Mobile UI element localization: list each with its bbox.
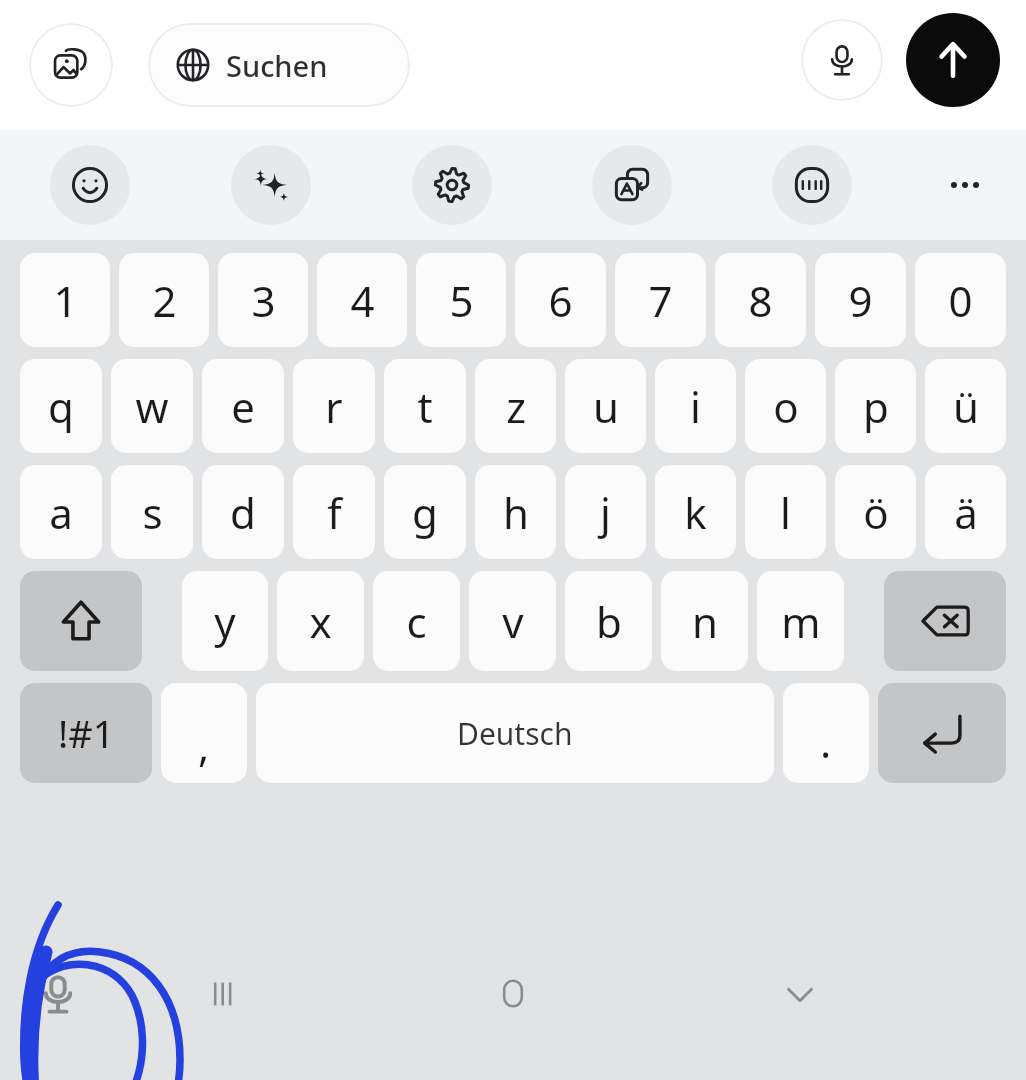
- button[interactable]: c: [373, 571, 460, 671]
- button[interactable]: t: [384, 359, 466, 453]
- staticText: f: [327, 484, 342, 541]
- button[interactable]: Emoji: [50, 145, 130, 225]
- button[interactable]: g: [384, 465, 466, 559]
- button[interactable]: Stickers and images: [29, 23, 113, 107]
- staticText: k: [684, 484, 707, 541]
- button[interactable]: Translate: [592, 145, 672, 225]
- staticText: 9: [848, 272, 873, 329]
- button[interactable]: 1: [20, 253, 110, 347]
- staticText: i: [690, 378, 701, 435]
- button[interactable]: j: [565, 465, 646, 559]
- button[interactable]: a: [20, 465, 102, 559]
- button[interactable]: 2: [119, 253, 209, 347]
- button[interactable]: 8: [715, 253, 806, 347]
- staticText: x: [309, 593, 332, 650]
- button[interactable]: Send: [906, 13, 1000, 107]
- staticText: 7: [648, 272, 673, 329]
- button[interactable]: Suchen: [148, 23, 410, 107]
- staticText: 3: [251, 272, 276, 329]
- button[interactable]: ü: [925, 359, 1006, 453]
- staticText: 4: [350, 272, 375, 329]
- button[interactable]: y: [182, 571, 268, 671]
- button[interactable]: k: [655, 465, 736, 559]
- button[interactable]: Enter: [878, 683, 1006, 783]
- button[interactable]: b: [565, 571, 652, 671]
- staticText: l: [780, 484, 791, 541]
- button[interactable]: o: [745, 359, 826, 453]
- button[interactable]: 0: [915, 253, 1006, 347]
- button[interactable]: l: [745, 465, 826, 559]
- button[interactable]: !#1: [20, 683, 152, 783]
- button[interactable]: Passwords: [772, 145, 852, 225]
- staticText: ü: [953, 378, 979, 435]
- button[interactable]: e: [202, 359, 284, 453]
- button[interactable]: w: [111, 359, 193, 453]
- button[interactable]: Shift: [20, 571, 142, 671]
- staticText: b: [596, 593, 622, 650]
- staticText: t: [417, 378, 433, 435]
- button[interactable]: 4: [317, 253, 407, 347]
- button[interactable]: 9: [815, 253, 906, 347]
- staticText: r: [325, 378, 343, 435]
- button[interactable]: 7: [615, 253, 706, 347]
- button[interactable]: AI suggestions: [231, 145, 311, 225]
- staticText: d: [230, 484, 256, 541]
- button[interactable]: h: [475, 465, 556, 559]
- staticText: v: [502, 593, 524, 650]
- staticText: q: [48, 378, 74, 435]
- staticText: w: [135, 378, 169, 435]
- staticText: p: [863, 378, 889, 435]
- button[interactable]: Voice input: [801, 19, 883, 101]
- button[interactable]: ä: [925, 465, 1006, 559]
- button[interactable]: Home: [477, 958, 549, 1030]
- button[interactable]: n: [661, 571, 748, 671]
- button[interactable]: f: [293, 465, 375, 559]
- staticText: ä: [954, 484, 978, 541]
- staticText: h: [503, 484, 529, 541]
- staticText: !#1: [58, 707, 115, 759]
- staticText: ö: [863, 484, 889, 541]
- button[interactable]: z: [475, 359, 556, 453]
- button[interactable]: 6: [515, 253, 606, 347]
- staticText: j: [600, 484, 611, 541]
- staticText: a: [49, 484, 73, 541]
- staticText: z: [506, 378, 526, 435]
- staticText: .: [820, 713, 832, 770]
- button[interactable]: d: [202, 465, 284, 559]
- button[interactable]: u: [565, 359, 646, 453]
- button[interactable]: 3: [218, 253, 308, 347]
- staticText: e: [231, 378, 255, 435]
- button[interactable]: Deutsch: [256, 683, 774, 783]
- button[interactable]: Hide keyboard: [764, 958, 836, 1030]
- staticText: 8: [748, 272, 773, 329]
- button[interactable]: ,: [161, 683, 247, 783]
- staticText: m: [781, 593, 821, 650]
- button[interactable]: Voice typing: [22, 958, 94, 1030]
- staticText: 2: [152, 272, 177, 329]
- staticText: 0: [948, 272, 973, 329]
- staticText: o: [773, 378, 799, 435]
- button[interactable]: x: [277, 571, 364, 671]
- button[interactable]: m: [757, 571, 844, 671]
- button[interactable]: Recent apps: [188, 958, 260, 1030]
- button[interactable]: Backspace: [884, 571, 1006, 671]
- staticText: c: [406, 593, 427, 650]
- button[interactable]: Settings: [412, 145, 492, 225]
- button[interactable]: q: [20, 359, 102, 453]
- staticText: g: [412, 484, 438, 541]
- staticText: y: [214, 593, 236, 650]
- button[interactable]: v: [469, 571, 556, 671]
- button[interactable]: r: [293, 359, 375, 453]
- staticText: 6: [548, 272, 573, 329]
- button[interactable]: More options: [925, 145, 1005, 225]
- staticText: 1: [53, 272, 78, 329]
- staticText: Suchen: [226, 46, 328, 85]
- button[interactable]: .: [783, 683, 869, 783]
- button[interactable]: p: [835, 359, 916, 453]
- button[interactable]: ö: [835, 465, 916, 559]
- button[interactable]: 5: [416, 253, 506, 347]
- staticText: ,: [198, 717, 210, 774]
- button[interactable]: i: [655, 359, 736, 453]
- button[interactable]: s: [111, 465, 193, 559]
- staticText: u: [593, 378, 619, 435]
